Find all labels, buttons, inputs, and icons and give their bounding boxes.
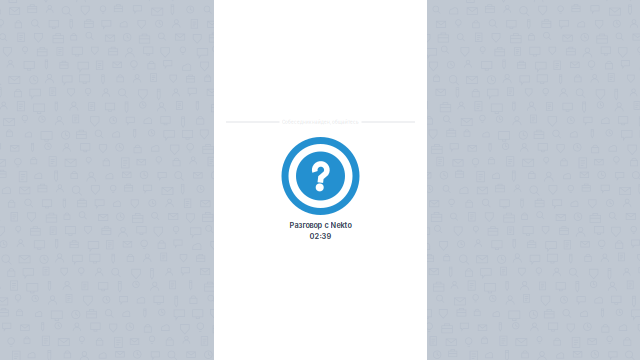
staticText: 02:39 [309,232,331,241]
staticText: Разговор с Nekto [289,221,351,230]
button[interactable]: Разговор с Nekto [214,137,427,241]
staticText: Собеседник найден, общайтесь [282,119,359,125]
